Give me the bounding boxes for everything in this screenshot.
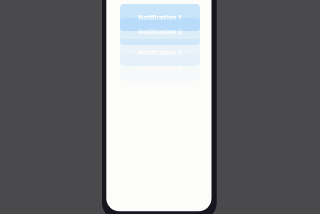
staticText: Notification 3	[138, 48, 182, 57]
staticText: Notification 4	[138, 63, 182, 72]
button[interactable]: Notification 1	[120, 4, 200, 31]
button[interactable]: Notification 3	[120, 39, 200, 66]
staticText: Notification 2	[138, 27, 182, 36]
button[interactable]: Notification 4	[120, 54, 200, 81]
button[interactable]: Notification 2	[120, 18, 200, 45]
staticText: Notification 1	[138, 13, 182, 22]
